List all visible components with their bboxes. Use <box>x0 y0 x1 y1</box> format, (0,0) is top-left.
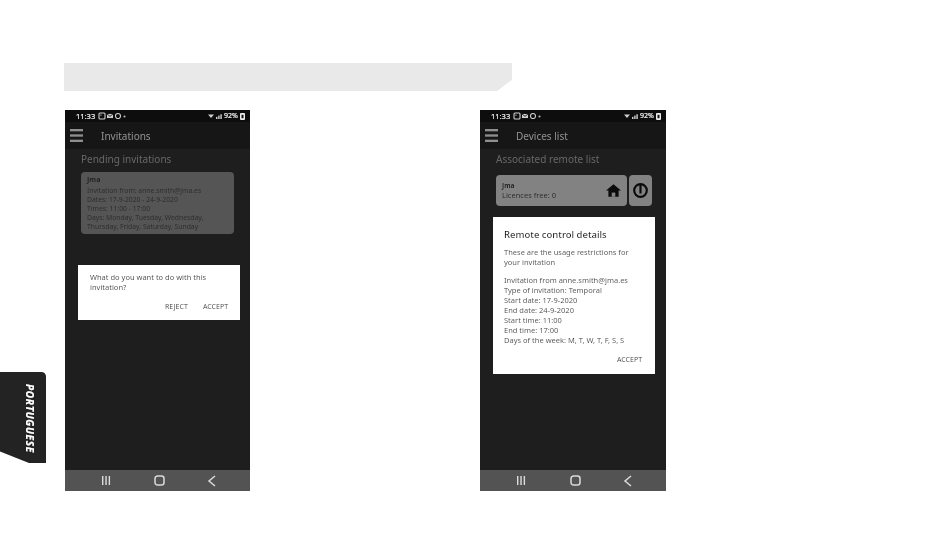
staticText: Jma <box>87 175 101 185</box>
button[interactable]: Power on remote <box>629 175 652 206</box>
staticText: Start date: 17-9-2020 <box>504 295 578 305</box>
staticText: Devices list <box>516 129 568 143</box>
button[interactable]: Jma <box>81 172 234 234</box>
staticText: Dates: 17-9-2020 - 24-9-2020 <box>87 195 178 204</box>
staticText: Licences free: 0 <box>502 190 556 200</box>
staticText: 11:33 <box>491 111 511 121</box>
staticText: Days of the week: M, T, W, T, F, S, S <box>504 335 625 345</box>
staticText: Jma <box>502 181 515 190</box>
staticText: PORTUGUESE <box>23 384 37 453</box>
button[interactable]: ACCEPT <box>200 300 232 314</box>
button[interactable]: Back <box>197 470 227 491</box>
staticText: Days: Monday, Tuesday, Wednesday, <box>87 213 204 222</box>
staticText: 92% <box>640 111 654 121</box>
staticText: Type of invitation: Temporal <box>504 285 602 295</box>
staticText: ACCEPT <box>617 355 643 365</box>
staticText: Invitation from: anne.smith@jma.es <box>87 186 202 195</box>
staticText: Pending invitations <box>81 152 172 166</box>
button[interactable]: Jma <box>496 175 627 206</box>
staticText: REJECT <box>165 302 188 312</box>
button[interactable]: Recent apps <box>91 470 121 491</box>
staticText: End date: 24-9-2020 <box>504 305 574 315</box>
staticText: 92% <box>224 111 238 121</box>
staticText: ACCEPT <box>203 302 229 312</box>
staticText: Invitations <box>101 129 151 143</box>
button[interactable]: Open navigation menu <box>65 122 87 149</box>
staticText: Times: 11:00 - 17:00 <box>87 204 151 213</box>
staticText: Thursday, Friday, Saturday, Sunday <box>87 222 199 231</box>
button[interactable]: Home <box>560 470 590 491</box>
button[interactable]: Recent apps <box>506 470 536 491</box>
staticText: Remote control details <box>504 228 607 241</box>
button[interactable]: REJECT <box>162 300 191 314</box>
staticText: These are the usage restrictions for you… <box>504 247 646 267</box>
button[interactable]: ACCEPT <box>614 353 646 367</box>
staticText: What do you want to do with this invitat… <box>90 272 232 292</box>
button[interactable]: Home <box>144 470 174 491</box>
staticText: Associated remote list <box>496 152 600 166</box>
button[interactable]: Back <box>613 470 643 491</box>
staticText: End time: 17:00 <box>504 325 559 335</box>
staticText: Start time: 11:00 <box>504 315 562 325</box>
button[interactable]: Portuguese language section <box>0 372 46 463</box>
button[interactable]: Open navigation menu <box>480 122 502 149</box>
staticText: 11:33 <box>76 111 96 121</box>
staticText: Invitation from anne.smith@jma.es <box>504 275 628 285</box>
